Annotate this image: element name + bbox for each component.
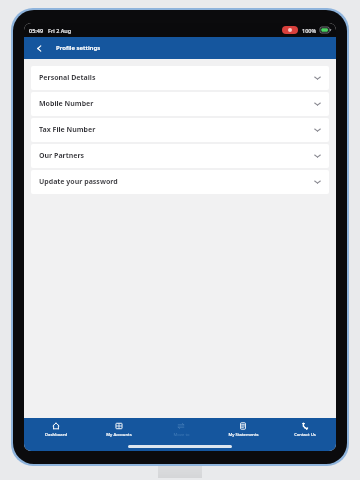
button[interactable]: My Statements bbox=[212, 418, 274, 442]
staticText: Contact Us bbox=[294, 432, 316, 438]
staticText: Mobile Number bbox=[39, 99, 94, 109]
staticText: Update your password bbox=[39, 177, 118, 187]
staticText: Tax File Number bbox=[39, 125, 96, 135]
staticText: Dashboard bbox=[45, 432, 67, 438]
button[interactable]: Mobile Number bbox=[31, 92, 329, 116]
staticText: Move to bbox=[173, 432, 190, 438]
other: Contact Us bbox=[301, 422, 309, 430]
staticText: Personal Details bbox=[39, 73, 96, 83]
staticText: My Statements bbox=[228, 432, 259, 438]
other: My Accounts bbox=[115, 422, 123, 430]
button[interactable]: My Accounts bbox=[87, 418, 150, 442]
staticText: 05:49 bbox=[29, 27, 44, 34]
button[interactable]: Dashboard bbox=[24, 418, 87, 442]
other: My Statements bbox=[239, 422, 247, 430]
button[interactable]: Move to bbox=[150, 418, 212, 442]
staticText: My Accounts bbox=[106, 432, 132, 438]
button[interactable]: Update your password bbox=[31, 170, 329, 194]
button[interactable]: Contact Us bbox=[274, 418, 336, 442]
button[interactable]: Back bbox=[32, 41, 46, 55]
other: Dashboard bbox=[52, 422, 60, 430]
button[interactable]: Tax File Number bbox=[31, 118, 329, 142]
button[interactable]: Our Partners bbox=[31, 144, 329, 168]
staticText: Fri 2 Aug bbox=[48, 27, 72, 34]
staticText: 100% bbox=[302, 27, 317, 34]
other: Move to bbox=[177, 422, 185, 430]
staticText: Our Partners bbox=[39, 151, 85, 161]
staticText: Profile settings bbox=[56, 44, 101, 52]
button[interactable]: Personal Details bbox=[31, 66, 329, 90]
